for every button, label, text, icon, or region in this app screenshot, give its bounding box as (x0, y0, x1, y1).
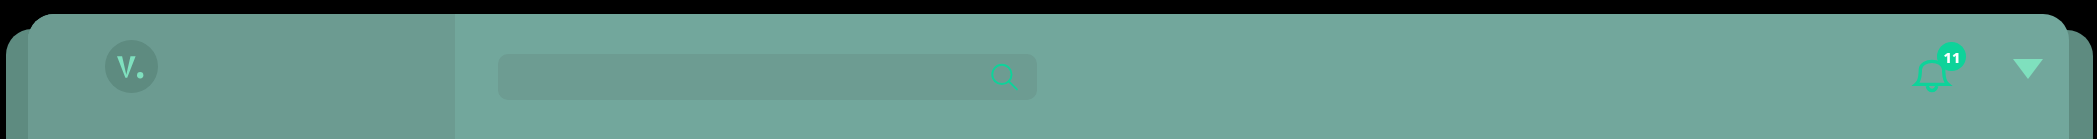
button[interactable]: Home (105, 40, 158, 93)
button[interactable]: Search (498, 54, 1037, 100)
staticText: 11 (1943, 47, 1961, 67)
button[interactable]: Open menu (2002, 43, 2054, 95)
button[interactable]: Notifications (1908, 36, 1974, 102)
